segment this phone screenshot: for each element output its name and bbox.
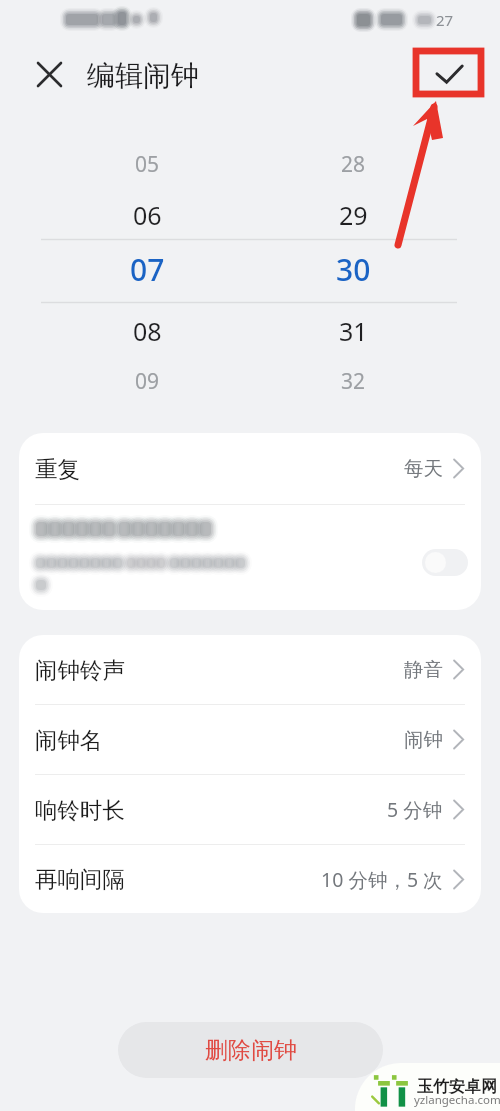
staticText: 5 分钟 bbox=[387, 796, 443, 823]
staticText: 删除闹钟 bbox=[205, 1036, 297, 1065]
button[interactable]: 29 bbox=[313, 196, 393, 233]
button[interactable]: 32 bbox=[313, 366, 393, 397]
button[interactable]: Close bbox=[27, 52, 72, 97]
staticText: 重复 bbox=[35, 455, 80, 483]
button[interactable]: 再响间隔 bbox=[19, 845, 481, 913]
staticText: 再响间隔 bbox=[35, 865, 125, 893]
staticText: 28 bbox=[341, 150, 366, 179]
button[interactable]: 28 bbox=[313, 149, 393, 180]
staticText: 05 bbox=[135, 150, 160, 179]
staticText: 玉竹安卓网 bbox=[417, 1077, 497, 1097]
staticText: 08 bbox=[133, 314, 162, 348]
staticText: 闹钟名 bbox=[35, 726, 103, 754]
button[interactable]: 08 bbox=[107, 312, 187, 349]
button[interactable]: Workdays option bbox=[19, 505, 481, 610]
staticText: 静音 bbox=[404, 657, 443, 682]
staticText: 每天 bbox=[404, 456, 443, 481]
staticText: 闹钟 bbox=[404, 727, 443, 752]
button[interactable]: Toggle workdays bbox=[422, 549, 468, 576]
staticText: 29 bbox=[339, 198, 368, 232]
button[interactable]: 删除闹钟 bbox=[118, 1022, 383, 1078]
staticText: 09 bbox=[135, 367, 160, 396]
button[interactable]: 闹钟名 bbox=[19, 705, 481, 774]
button[interactable]: 31 bbox=[313, 312, 393, 349]
button[interactable]: 响铃时长 bbox=[19, 775, 481, 844]
staticText: 31 bbox=[339, 314, 368, 348]
button[interactable]: 闹钟铃声 bbox=[19, 635, 481, 704]
staticText: 响铃时长 bbox=[35, 796, 125, 824]
staticText: 闹钟铃声 bbox=[35, 656, 125, 684]
button[interactable]: 06 bbox=[107, 196, 187, 233]
button[interactable]: 07 bbox=[107, 247, 187, 292]
button[interactable]: 05 bbox=[107, 149, 187, 180]
staticText: 30 bbox=[336, 249, 371, 290]
staticText: 编辑闹钟 bbox=[87, 58, 199, 93]
button[interactable]: 09 bbox=[107, 366, 187, 397]
staticText: 27 bbox=[436, 10, 454, 30]
button[interactable]: 30 bbox=[313, 247, 393, 292]
staticText: 10 分钟，5 次 bbox=[321, 866, 443, 893]
button[interactable]: 重复 bbox=[19, 433, 481, 504]
staticText: 06 bbox=[133, 198, 162, 232]
staticText: 32 bbox=[341, 367, 366, 396]
staticText: 07 bbox=[130, 249, 165, 290]
button[interactable]: Confirm bbox=[426, 52, 472, 98]
staticText: yzlangecha.com bbox=[414, 1092, 500, 1108]
